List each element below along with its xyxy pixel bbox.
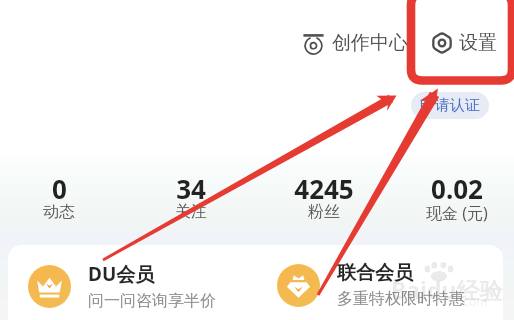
staticText: 申请认证 [420,96,480,115]
staticText: .com [460,293,488,309]
button[interactable]: 联合会员 [277,261,465,309]
staticText: DU会员 [88,261,155,287]
staticText: 多重特权限时特惠 [337,289,465,309]
button[interactable]: 申请认证 [411,92,489,119]
button[interactable]: DU会员 [28,261,216,311]
staticText: 关注 [175,202,207,222]
staticText: 34 [176,171,206,206]
button[interactable]: 0.02 [390,171,514,228]
staticText: 现金 (元) [426,202,488,224]
button[interactable]: 创作中心 [300,27,411,59]
button[interactable]: 4245 [257,171,390,226]
staticText: 创作中心 [332,31,408,55]
button[interactable]: 34 [125,171,257,226]
staticText: 动态 [43,202,75,222]
button[interactable]: 0 [0,171,125,226]
staticText: 0 [52,171,67,206]
staticText: 粉丝 [308,202,340,222]
staticText: 0.02 [431,171,483,206]
staticText: 设置 [459,31,497,55]
staticText: Baidu经验 [391,274,503,305]
staticText: 联合会员 [337,261,413,285]
button[interactable]: 设置 [428,27,500,59]
staticText: 4245 [294,171,354,206]
staticText: 问一问咨询享半价 [88,291,216,311]
